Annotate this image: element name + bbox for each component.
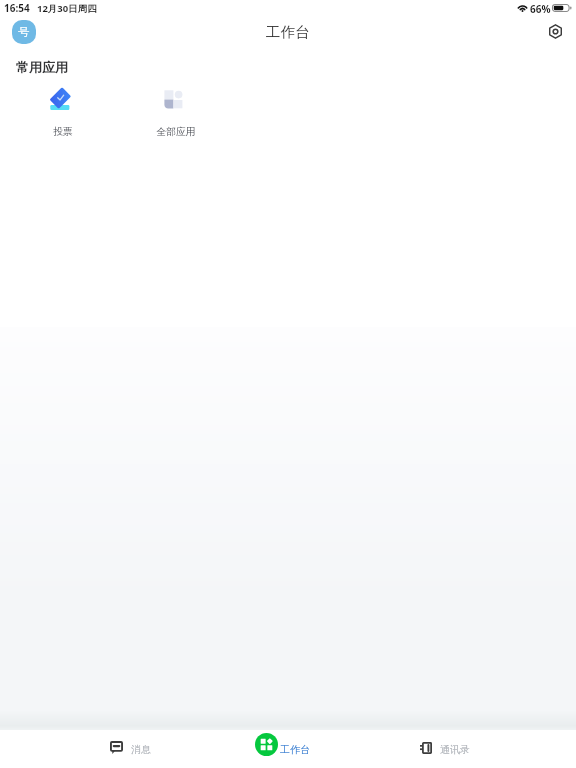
button[interactable]: 消息 — [110, 730, 151, 768]
staticText: 66% — [530, 2, 551, 16]
staticText: 全部应用 — [156, 126, 196, 138]
staticText: 工作台 — [266, 23, 310, 41]
staticText: 12月30日周四 — [37, 2, 97, 15]
button[interactable]: 全部应用 — [117, 84, 230, 137]
button[interactable]: 通讯录 — [420, 730, 470, 768]
staticText: 常用应用 — [16, 59, 68, 75]
staticText: 号 — [18, 25, 30, 39]
button[interactable]: Settings — [545, 21, 565, 41]
staticText: 工作台 — [280, 743, 310, 756]
staticText: 16:54 — [4, 1, 30, 15]
staticText: 通讯录 — [440, 743, 470, 756]
button[interactable]: 投票 — [4, 84, 117, 137]
staticText: 消息 — [131, 743, 151, 756]
staticText: 投票 — [53, 126, 73, 138]
button[interactable]: Account avatar — [12, 20, 36, 44]
button[interactable]: 工作台 — [255, 730, 310, 768]
